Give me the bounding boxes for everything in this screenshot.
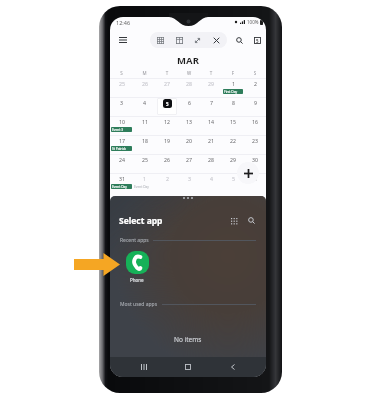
- staticText: M: [133, 70, 156, 76]
- button[interactable]: 5: [222, 173, 244, 192]
- staticText: 18: [142, 137, 148, 144]
- button[interactable]: 10: [110, 116, 133, 135]
- staticText: 26: [164, 156, 170, 163]
- button[interactable]: 14: [200, 116, 222, 135]
- staticText: 29: [230, 156, 236, 163]
- button[interactable]: 21: [200, 135, 222, 154]
- staticText: 30: [252, 156, 258, 163]
- button[interactable]: Add event: [237, 162, 259, 184]
- button[interactable]: 25: [133, 154, 156, 173]
- button[interactable]: 13: [178, 116, 200, 135]
- button[interactable]: 12: [156, 116, 178, 135]
- button[interactable]: 15: [222, 116, 244, 135]
- button[interactable]: 3: [178, 173, 200, 192]
- button[interactable]: 18: [133, 135, 156, 154]
- staticText: 14: [208, 118, 214, 125]
- staticText: 12:46: [116, 19, 131, 26]
- button[interactable]: 29: [222, 154, 244, 173]
- staticText: Phone: [130, 277, 144, 283]
- staticText: 11: [142, 118, 148, 125]
- staticText: No items: [174, 335, 202, 344]
- button[interactable]: 5: [156, 97, 178, 116]
- staticText: F: [222, 70, 244, 76]
- staticText: 1: [232, 80, 235, 87]
- staticText: 4: [143, 99, 146, 106]
- button[interactable]: Phone: [120, 251, 154, 283]
- staticText: 3: [188, 175, 191, 182]
- button[interactable]: 16: [244, 116, 266, 135]
- staticText: 4: [210, 175, 213, 182]
- button[interactable]: Today: [249, 32, 266, 49]
- button[interactable]: 22: [222, 135, 244, 154]
- button[interactable]: Close: [208, 32, 225, 48]
- button[interactable]: 1: [222, 78, 244, 97]
- button[interactable]: 23: [244, 135, 266, 154]
- button[interactable]: 31: [110, 173, 133, 192]
- staticText: 29: [208, 80, 214, 87]
- button[interactable]: 2: [244, 78, 266, 97]
- staticText: Event 3: [112, 128, 123, 132]
- button[interactable]: 1: [133, 173, 156, 192]
- button[interactable]: 11: [133, 116, 156, 135]
- button[interactable]: 24: [110, 154, 133, 173]
- button[interactable]: 28: [200, 154, 222, 173]
- button[interactable]: 25: [110, 78, 133, 97]
- button[interactable]: 6: [178, 97, 200, 116]
- button[interactable]: 2: [156, 173, 178, 192]
- staticText: 3: [120, 99, 123, 106]
- staticText: 13: [186, 118, 192, 125]
- staticText: Most used apps: [120, 301, 158, 308]
- staticText: 5: [166, 101, 169, 107]
- button[interactable]: 27: [156, 78, 178, 97]
- staticText: MAR: [110, 54, 266, 67]
- button[interactable]: 30: [244, 154, 266, 173]
- staticText: First Day: [224, 90, 238, 94]
- button[interactable]: Search: [231, 32, 248, 49]
- button[interactable]: Month view: [152, 32, 169, 48]
- button[interactable]: 4: [200, 173, 222, 192]
- staticText: 31: [119, 175, 125, 182]
- button[interactable]: 6: [244, 173, 266, 192]
- staticText: 8: [232, 99, 235, 106]
- button[interactable]: 8: [222, 97, 244, 116]
- button[interactable]: 9: [244, 97, 266, 116]
- staticText: 10: [119, 118, 125, 125]
- button[interactable]: 7: [200, 97, 222, 116]
- button[interactable]: Grid view: [227, 214, 240, 227]
- staticText: S: [110, 70, 133, 76]
- button[interactable]: 28: [178, 78, 200, 97]
- staticText: 17: [119, 137, 125, 144]
- button[interactable]: 3: [110, 97, 133, 116]
- staticText: 26: [142, 80, 148, 87]
- button[interactable]: Recents: [133, 357, 155, 377]
- staticText: S: [244, 70, 266, 76]
- staticText: 2: [166, 175, 169, 182]
- button[interactable]: Search: [245, 214, 258, 227]
- button[interactable]: 20: [178, 135, 200, 154]
- staticText: 100%: [247, 19, 259, 25]
- button[interactable]: 4: [133, 97, 156, 116]
- button[interactable]: 26: [156, 154, 178, 173]
- button[interactable]: 17: [110, 135, 133, 154]
- staticText: 5: [256, 38, 259, 44]
- staticText: 23: [252, 137, 258, 144]
- staticText: 5: [232, 175, 235, 182]
- staticText: Event Day: [112, 185, 127, 189]
- button[interactable]: 26: [133, 78, 156, 97]
- staticText: T: [156, 70, 178, 76]
- button[interactable]: Menu: [115, 32, 131, 48]
- button[interactable]: Day view: [171, 32, 188, 48]
- button[interactable]: 19: [156, 135, 178, 154]
- staticText: 16: [252, 118, 258, 125]
- button[interactable]: Home: [177, 357, 199, 377]
- staticText: 28: [208, 156, 214, 163]
- staticText: Recent apps: [120, 237, 149, 244]
- staticText: 21: [208, 137, 214, 144]
- button[interactable]: Back: [222, 357, 244, 377]
- button[interactable]: 27: [178, 154, 200, 173]
- staticText: 7: [210, 99, 213, 106]
- staticText: 28: [186, 80, 192, 87]
- staticText: 19: [164, 137, 170, 144]
- button[interactable]: 29: [200, 78, 222, 97]
- button[interactable]: Expand: [189, 32, 206, 48]
